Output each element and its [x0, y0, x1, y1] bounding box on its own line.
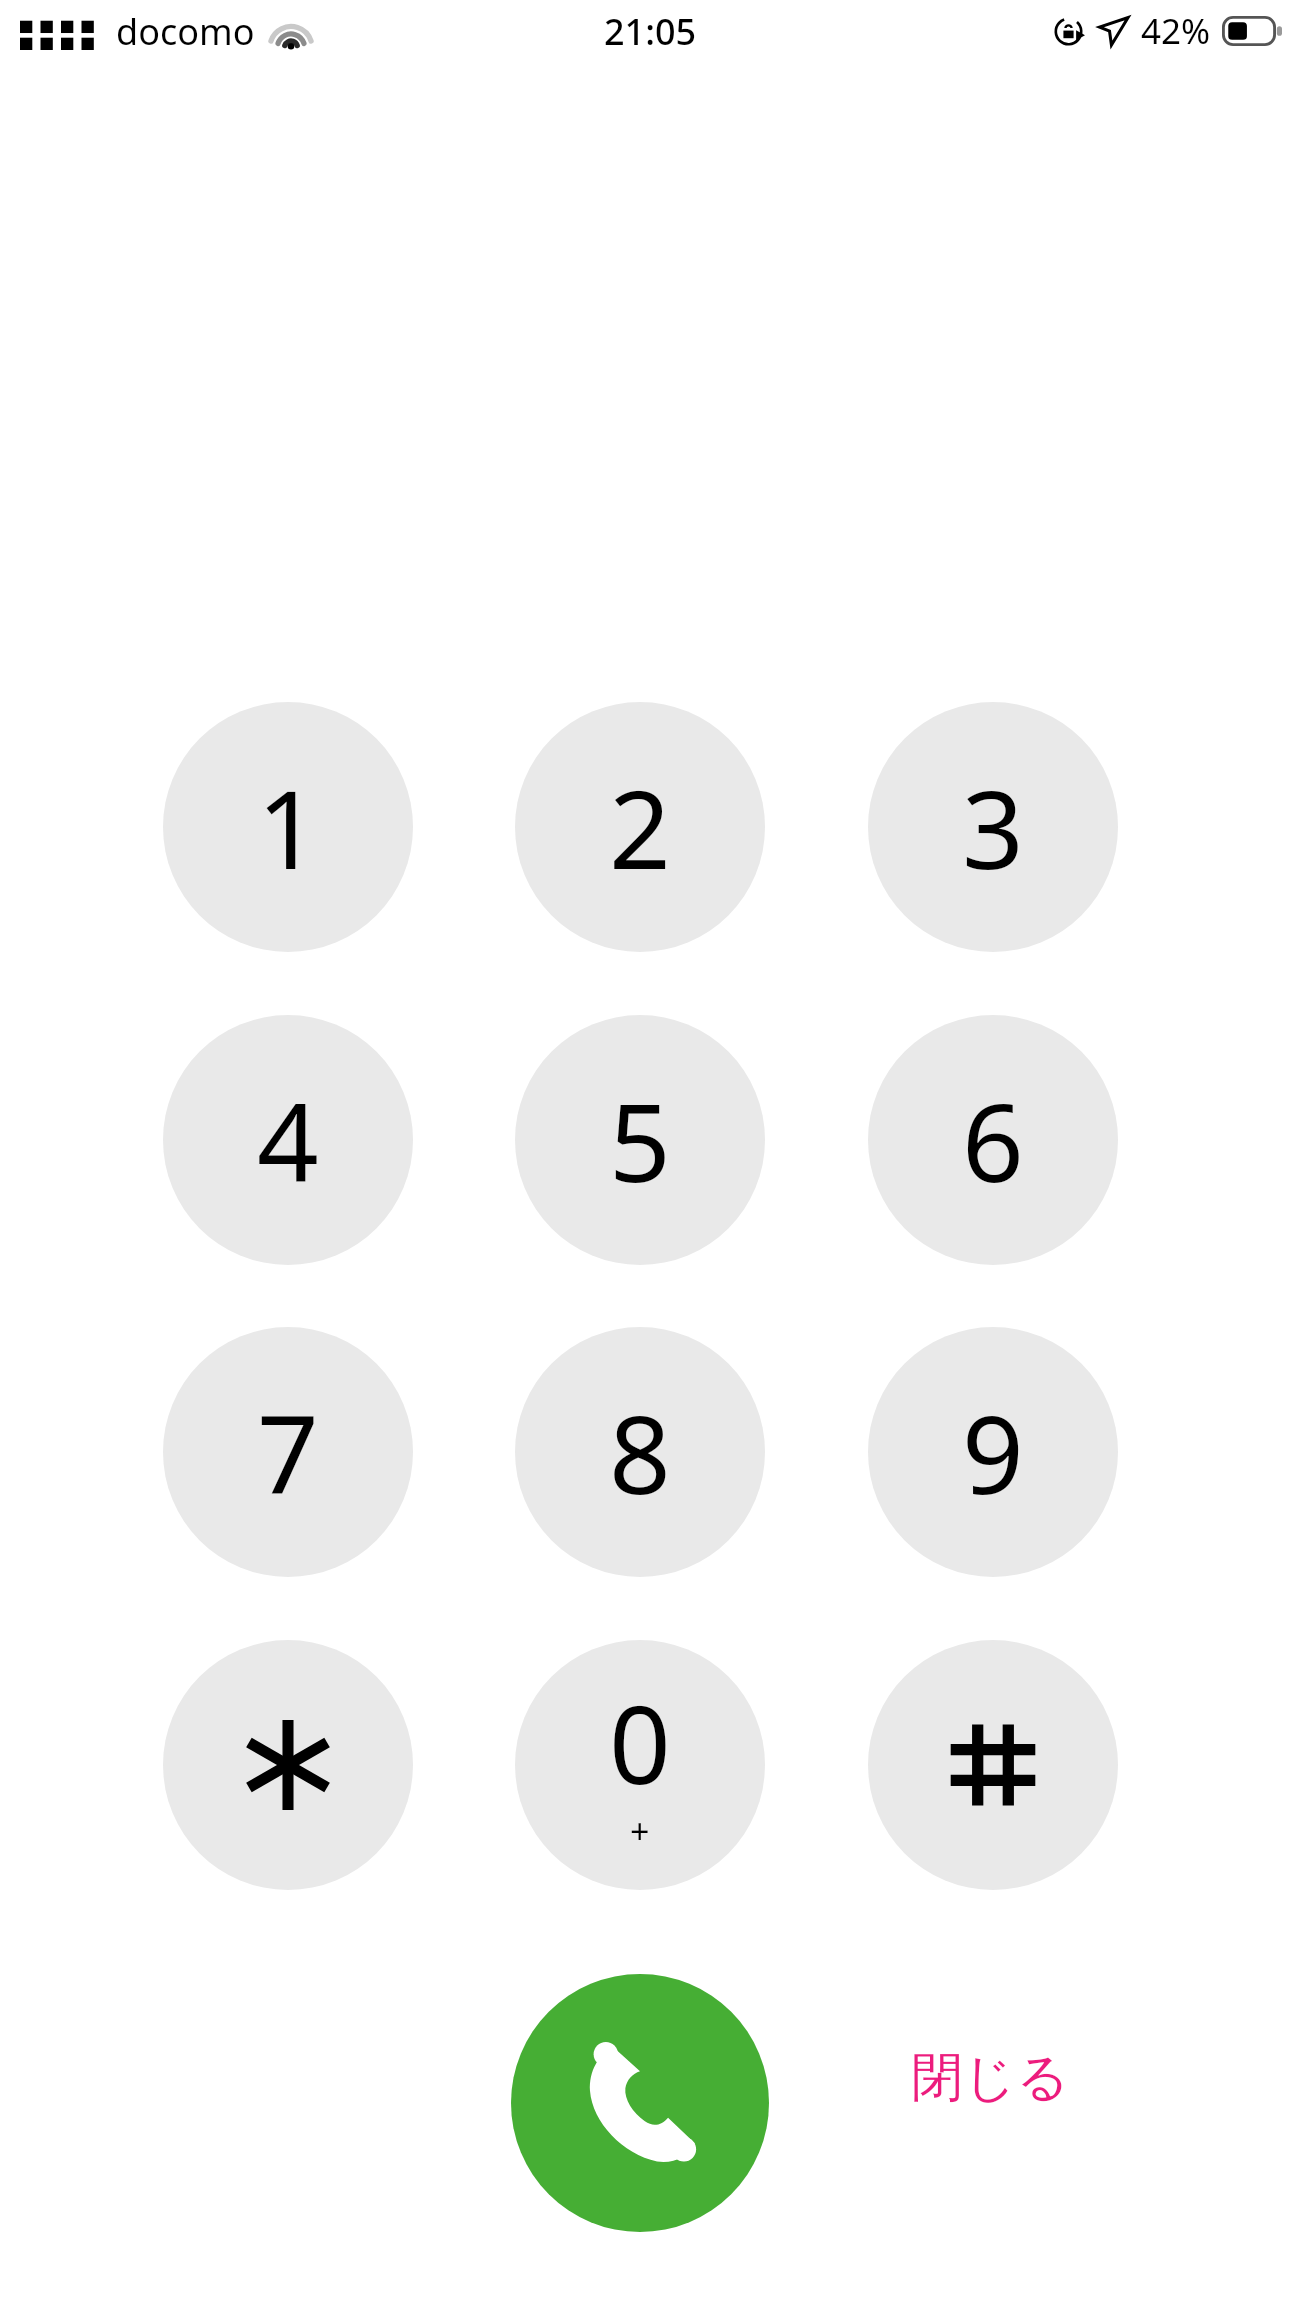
staticText: 閉じる: [911, 2045, 1070, 2111]
staticText: +: [630, 1808, 650, 1854]
button[interactable]: Call: [511, 1974, 769, 2232]
button[interactable]: 4: [163, 1015, 413, 1265]
staticText: 21:05: [604, 7, 697, 56]
staticText: docomo: [116, 7, 255, 56]
staticText: 8: [609, 1379, 671, 1526]
button[interactable]: Star: [163, 1640, 413, 1890]
button[interactable]: 9: [868, 1327, 1118, 1577]
staticText: 0: [609, 1669, 671, 1816]
staticText: 7: [257, 1379, 319, 1526]
button[interactable]: 閉じる: [880, 2028, 1100, 2128]
staticText: 3: [962, 754, 1024, 901]
staticText: 6: [962, 1067, 1024, 1214]
button[interactable]: 8: [515, 1327, 765, 1577]
button[interactable]: 0: [515, 1640, 765, 1890]
button[interactable]: 5: [515, 1015, 765, 1265]
button[interactable]: 2: [515, 702, 765, 952]
other: Location: [1098, 15, 1130, 47]
other: Rotation lock: [1053, 16, 1084, 47]
staticText: 9: [962, 1379, 1024, 1526]
button[interactable]: 1: [163, 702, 413, 952]
button[interactable]: 7: [163, 1327, 413, 1577]
button[interactable]: Pound: [868, 1640, 1118, 1890]
staticText: 42%: [1141, 7, 1211, 55]
staticText: 4: [257, 1067, 319, 1214]
button[interactable]: 6: [868, 1015, 1118, 1265]
staticText: 2: [609, 754, 671, 901]
staticText: 1: [257, 754, 319, 901]
button[interactable]: 3: [868, 702, 1118, 952]
staticText: 5: [609, 1067, 671, 1214]
